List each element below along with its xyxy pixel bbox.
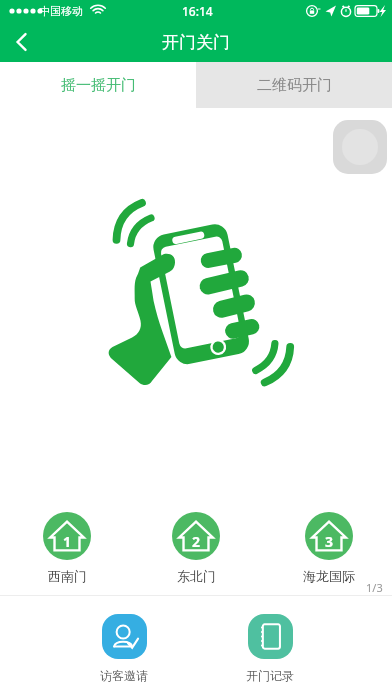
staticText: 开门关门 [162,32,230,53]
staticText: 西南门 [48,568,87,584]
button[interactable]: Back [0,22,44,62]
staticText: 中国移动 [39,4,83,18]
staticText: 1/3 [366,580,383,595]
staticText: 2 [192,532,201,551]
button[interactable]: Sound toggle [333,120,387,174]
staticText: 3 [325,532,334,551]
staticText: 东北门 [177,568,216,584]
button[interactable]: 2 [172,512,220,584]
staticText: 摇一摇开门 [61,76,136,95]
staticText: 1 [63,532,72,551]
button[interactable]: 访客邀请 [100,614,148,683]
button[interactable]: 3 [303,512,355,584]
staticText: 开门记录 [246,668,294,683]
button[interactable]: 1 [43,512,91,584]
staticText: 二维码开门 [257,76,332,95]
staticText: 海龙国际 [303,568,355,584]
button[interactable]: 开门记录 [246,614,294,683]
staticText: 16:14 [182,3,213,19]
button[interactable]: 二维码开门 [196,62,392,108]
staticText: 访客邀请 [100,668,148,683]
button[interactable]: 摇一摇开门 [0,62,196,108]
